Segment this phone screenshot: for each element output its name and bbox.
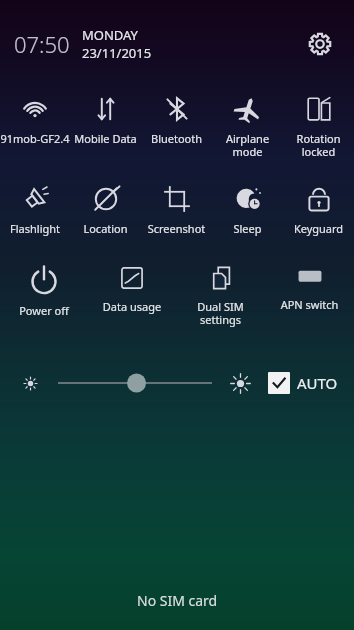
button[interactable]: Power off	[0, 258, 88, 318]
button[interactable]: Keyguard	[283, 178, 354, 236]
staticText: Bluetooth	[141, 131, 212, 146]
staticText: 91mob-GF2.4	[0, 131, 70, 146]
staticText: 07:50	[14, 29, 70, 59]
button[interactable]: Dual SIM settings	[176, 258, 265, 327]
staticText: Airplane mode	[212, 131, 283, 159]
button[interactable]: Brightness slider	[58, 365, 212, 401]
button[interactable]: Screenshot	[141, 178, 212, 236]
button[interactable]: Settings	[300, 24, 340, 64]
button[interactable]: Decrease brightness	[12, 365, 48, 401]
staticText: 23/11/2015	[82, 44, 152, 62]
staticText: Mobile Data	[70, 131, 141, 146]
button[interactable]: Increase brightness	[222, 365, 258, 401]
button[interactable]: AUTO	[264, 368, 342, 398]
button[interactable]: Bluetooth	[141, 88, 212, 146]
staticText: No SIM card	[137, 591, 218, 610]
button[interactable]: Data usage	[88, 258, 176, 314]
staticText: Sleep	[212, 221, 283, 236]
staticText: AUTO	[297, 373, 338, 393]
button[interactable]: Sleep	[212, 178, 283, 236]
staticText: Location	[70, 221, 141, 236]
button[interactable]: Mobile Data	[70, 88, 141, 146]
staticText: Flashlight	[0, 221, 70, 236]
button[interactable]: Rotation locked	[283, 88, 354, 159]
staticText: Rotation locked	[283, 131, 354, 159]
staticText: Keyguard	[283, 221, 354, 236]
staticText: Screenshot	[141, 221, 212, 236]
staticText: Power off	[0, 303, 88, 318]
staticText: Data usage	[88, 299, 176, 314]
button[interactable]: Flashlight	[0, 178, 70, 236]
staticText: Dual SIM settings	[176, 299, 265, 327]
button[interactable]: 91mob-GF2.4	[0, 88, 70, 146]
button[interactable]: APN switch	[265, 258, 354, 312]
staticText: MONDAY	[82, 26, 138, 44]
button[interactable]: Location	[70, 178, 141, 236]
button[interactable]: Airplane mode	[212, 88, 283, 159]
staticText: APN switch	[265, 297, 354, 312]
